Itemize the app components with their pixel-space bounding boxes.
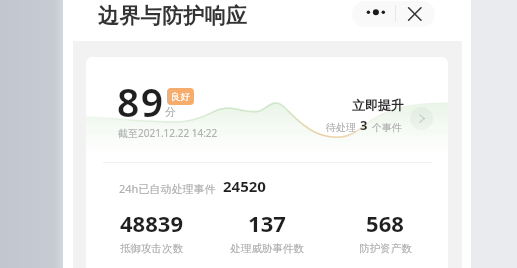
button[interactable]: More options xyxy=(352,1,395,27)
button[interactable]: 568 xyxy=(325,208,445,251)
staticText: 抵御攻击次数 xyxy=(120,242,183,255)
staticText: 24520 xyxy=(223,176,266,196)
staticText: 137 xyxy=(248,208,286,238)
staticText: 3 xyxy=(360,116,368,134)
staticText: 立即提升 xyxy=(352,97,404,113)
staticText: 边界与防护响应 xyxy=(98,3,248,29)
staticText: 89 xyxy=(117,75,165,128)
staticText: 分 xyxy=(165,105,176,119)
staticText: 处理威胁事件数 xyxy=(230,242,304,255)
staticText: 个事件 xyxy=(372,121,402,134)
button[interactable]: Close xyxy=(396,1,435,27)
staticText: 防护资产数 xyxy=(359,242,412,255)
staticText: 截至2021.12.22 14:22 xyxy=(118,126,218,140)
staticText: 24h已自动处理事件 xyxy=(119,181,216,196)
staticText: 568 xyxy=(366,208,404,238)
button[interactable]: Improve now xyxy=(410,107,433,130)
button[interactable]: 48839 xyxy=(91,208,211,251)
staticText: 良好 xyxy=(171,91,190,103)
button[interactable]: 137 xyxy=(207,208,327,251)
staticText: 待处理 xyxy=(326,121,356,134)
staticText: 48839 xyxy=(120,208,183,238)
button[interactable]: More options xyxy=(352,1,435,27)
button[interactable]: 89 xyxy=(86,57,448,268)
